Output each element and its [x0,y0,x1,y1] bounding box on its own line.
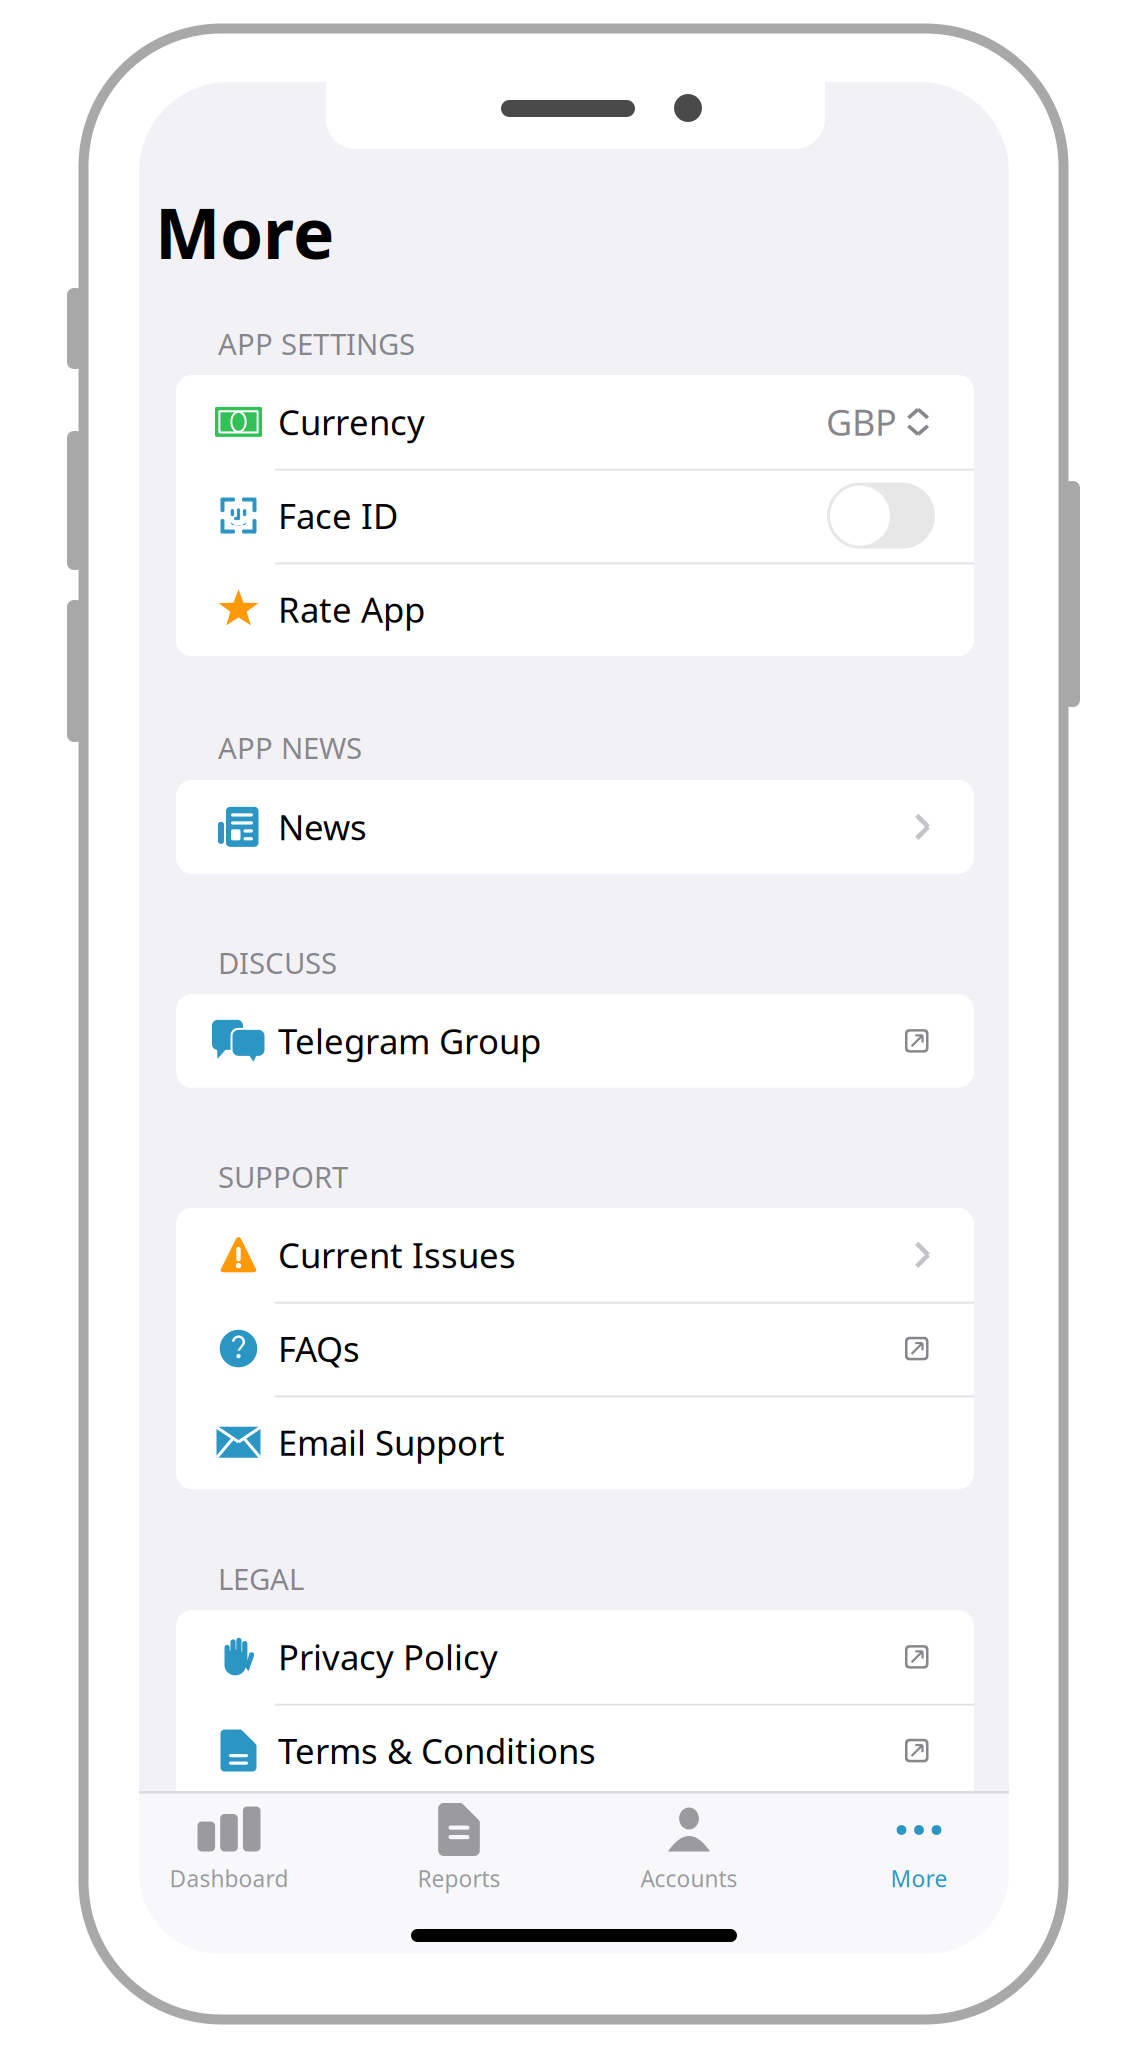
staticText: More [155,186,334,278]
staticText: Reports [417,1863,500,1893]
button[interactable]: FAQs [176,1302,974,1395]
button[interactable]: Current Issues [176,1208,974,1302]
staticText: GBP [826,398,897,446]
staticText: News [278,804,367,850]
button[interactable]: Terms & Conditions [176,1704,974,1797]
staticText: LEGAL [218,1559,304,1598]
staticText: Email Support [278,1419,505,1465]
button[interactable]: Privacy Policy [176,1610,974,1704]
button[interactable]: Accounts [582,1797,796,1897]
staticText: APP NEWS [218,728,362,767]
button[interactable]: Currency [176,375,974,469]
staticText: DISCUSS [218,943,337,982]
staticText: More [890,1863,947,1893]
staticText: Accounts [640,1863,737,1893]
staticText: Rate App [278,586,425,632]
button[interactable]: Email Support [176,1395,974,1489]
staticText: Telegram Group [278,1018,541,1064]
button[interactable]: Reports [352,1797,566,1897]
button[interactable]: Face ID [827,483,935,549]
staticText: Currency [278,399,425,445]
staticText: FAQs [278,1325,360,1371]
button[interactable]: Dashboard [122,1797,336,1897]
button[interactable]: Telegram Group [176,994,974,1088]
staticText: SUPPORT [218,1157,348,1196]
button[interactable]: News [176,780,974,874]
staticText: Terms & Conditions [278,1727,596,1773]
staticText: APP SETTINGS [218,324,415,363]
button[interactable]: More [812,1797,1026,1897]
staticText: Face ID [278,492,398,538]
staticText: Privacy Policy [278,1634,498,1680]
button[interactable]: Rate App [176,562,974,656]
staticText: Current Issues [278,1232,516,1278]
staticText: Dashboard [169,1863,288,1893]
